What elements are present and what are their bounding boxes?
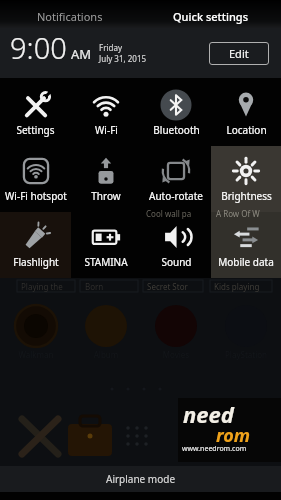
staticText: Throw	[91, 189, 121, 203]
button[interactable]: Edit	[209, 42, 269, 65]
staticText: Edit	[229, 46, 249, 61]
staticText: Airplane mode	[106, 472, 176, 486]
button[interactable]: Settings	[0, 80, 71, 146]
button[interactable]: Notifications	[0, 0, 140, 28]
staticText: AM	[71, 45, 92, 63]
button[interactable]: Quick settings	[140, 0, 281, 28]
staticText: Playing the	[21, 281, 63, 292]
staticText: Auto-rotate	[149, 189, 203, 203]
staticText: Bluetooth	[153, 123, 200, 137]
staticText: Sound	[161, 255, 192, 269]
button[interactable]: STAMINA	[71, 212, 141, 278]
button[interactable]: Brightness	[211, 146, 281, 212]
button[interactable]: Airplane mode	[0, 466, 281, 492]
staticText: A Row Of W	[216, 208, 260, 219]
button[interactable]: Wi-Fi	[71, 80, 141, 146]
staticText: Brightness	[221, 189, 272, 203]
staticText: rom	[216, 423, 251, 448]
button[interactable]: Auto-rotate	[141, 146, 211, 212]
staticText: Secret Stor	[147, 281, 188, 292]
staticText: Quick settings	[173, 9, 249, 24]
staticText: Wi-Fi hotspot	[5, 189, 67, 203]
button[interactable]: Flashlight	[0, 212, 71, 278]
staticText: 9:00	[10, 28, 67, 67]
button[interactable]: Location	[211, 80, 281, 146]
staticText: July 31, 2015	[99, 53, 147, 64]
staticText: Mobile data	[218, 255, 274, 269]
button[interactable]: Sound	[141, 212, 211, 278]
button[interactable]: Throw	[71, 146, 141, 212]
staticText: Location	[226, 123, 267, 137]
button[interactable]: Bluetooth	[141, 80, 211, 146]
staticText: Flashlight	[13, 255, 59, 269]
staticText: need	[183, 399, 234, 429]
staticText: Wi-Fi	[95, 123, 118, 137]
staticText: Settings	[16, 123, 55, 137]
staticText: Notifications	[37, 9, 103, 24]
button[interactable]: Mobile data	[211, 212, 281, 278]
staticText: www.needrom.com	[182, 444, 247, 454]
staticText: Friday	[99, 42, 123, 53]
staticText: Born	[85, 281, 104, 292]
staticText: Cool wall pa	[146, 208, 192, 219]
button[interactable]: Wi-Fi hotspot	[0, 146, 71, 212]
staticText: Kids playing	[214, 281, 260, 292]
staticText: STAMINA	[84, 255, 128, 269]
